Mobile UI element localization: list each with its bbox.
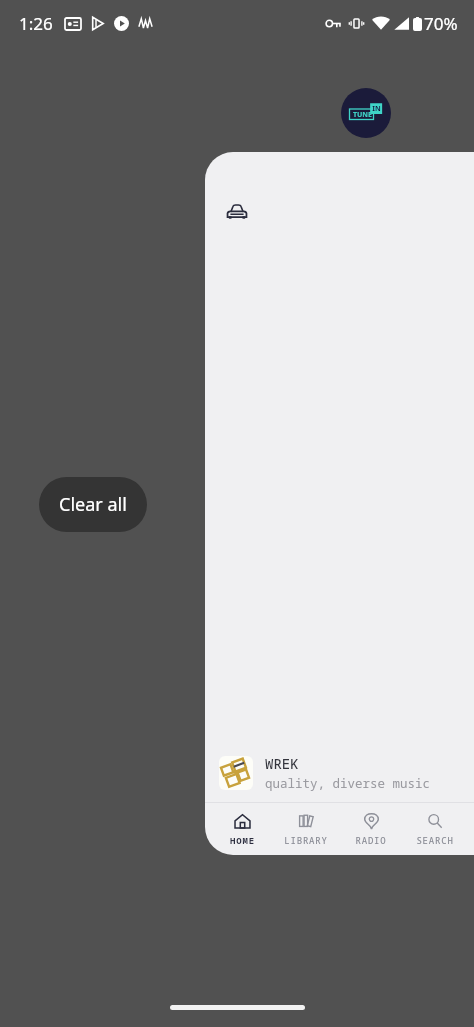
- button[interactable]: WREK: [205, 744, 474, 802]
- button[interactable]: Android Auto / car mode: [222, 200, 252, 224]
- button[interactable]: TuneIn app icon: [341, 88, 391, 138]
- button[interactable]: SEARCH: [403, 803, 467, 855]
- staticText: WREK: [265, 754, 299, 773]
- staticText: HOME: [230, 834, 255, 846]
- button[interactable]: LIBRARY: [273, 803, 339, 855]
- staticText: 70%: [424, 12, 458, 35]
- staticText: TUNE: [353, 110, 372, 120]
- staticText: SEARCH: [416, 834, 454, 846]
- staticText: RADIO: [355, 834, 387, 846]
- button[interactable]: RADIO: [339, 803, 403, 855]
- button[interactable]: Android Auto / car mode: [205, 152, 474, 855]
- button[interactable]: Clear all: [39, 477, 147, 532]
- button[interactable]: HOME: [211, 803, 273, 855]
- staticText: LIBRARY: [284, 834, 328, 846]
- staticText: Clear all: [59, 492, 127, 517]
- staticText: 1:26: [19, 12, 53, 35]
- staticText: quality, diverse music: [265, 775, 431, 792]
- staticText: IN: [372, 104, 381, 114]
